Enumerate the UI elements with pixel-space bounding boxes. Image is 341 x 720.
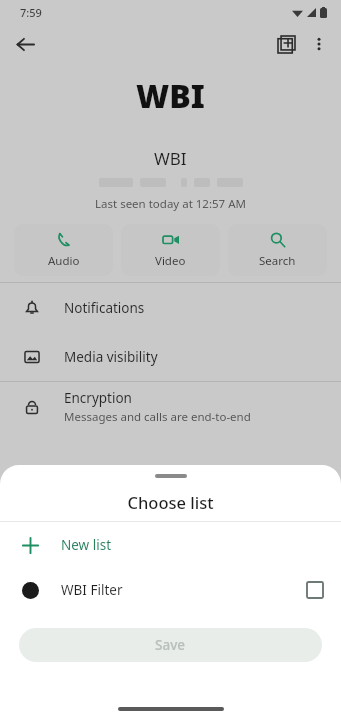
staticText: Messages and calls are end-to-end bbox=[64, 409, 251, 425]
staticText: Search bbox=[259, 253, 296, 269]
button[interactable]: Audio bbox=[14, 224, 113, 276]
staticText: Save bbox=[155, 636, 186, 654]
staticText: Choose list bbox=[127, 491, 214, 513]
button[interactable]: Search bbox=[228, 224, 327, 276]
staticText: Video bbox=[155, 253, 186, 269]
button[interactable]: Save bbox=[19, 628, 322, 662]
button[interactable]: WBI Filter bbox=[0, 568, 341, 612]
button[interactable]: New list bbox=[0, 522, 341, 568]
button[interactable]: Back bbox=[8, 27, 42, 61]
staticText: Notifications bbox=[64, 299, 145, 317]
staticText: WBI bbox=[136, 74, 205, 118]
button[interactable]: Media visibility bbox=[0, 332, 341, 381]
staticText: WBI bbox=[154, 147, 187, 170]
button[interactable]: More options bbox=[303, 28, 335, 60]
button[interactable]: Add to list bbox=[269, 27, 303, 61]
staticText: New list bbox=[61, 536, 112, 554]
button[interactable]: Notifications bbox=[0, 283, 341, 332]
staticText: WBI Filter bbox=[61, 581, 307, 599]
staticText: Encryption bbox=[64, 389, 132, 407]
button[interactable]: Video bbox=[121, 224, 220, 276]
staticText: 7:59 bbox=[20, 5, 42, 20]
staticText: Media visibility bbox=[64, 348, 158, 366]
staticText: Last seen today at 12:57 AM bbox=[95, 196, 246, 212]
staticText: Audio bbox=[48, 253, 80, 269]
button[interactable]: Encryption bbox=[0, 382, 341, 431]
